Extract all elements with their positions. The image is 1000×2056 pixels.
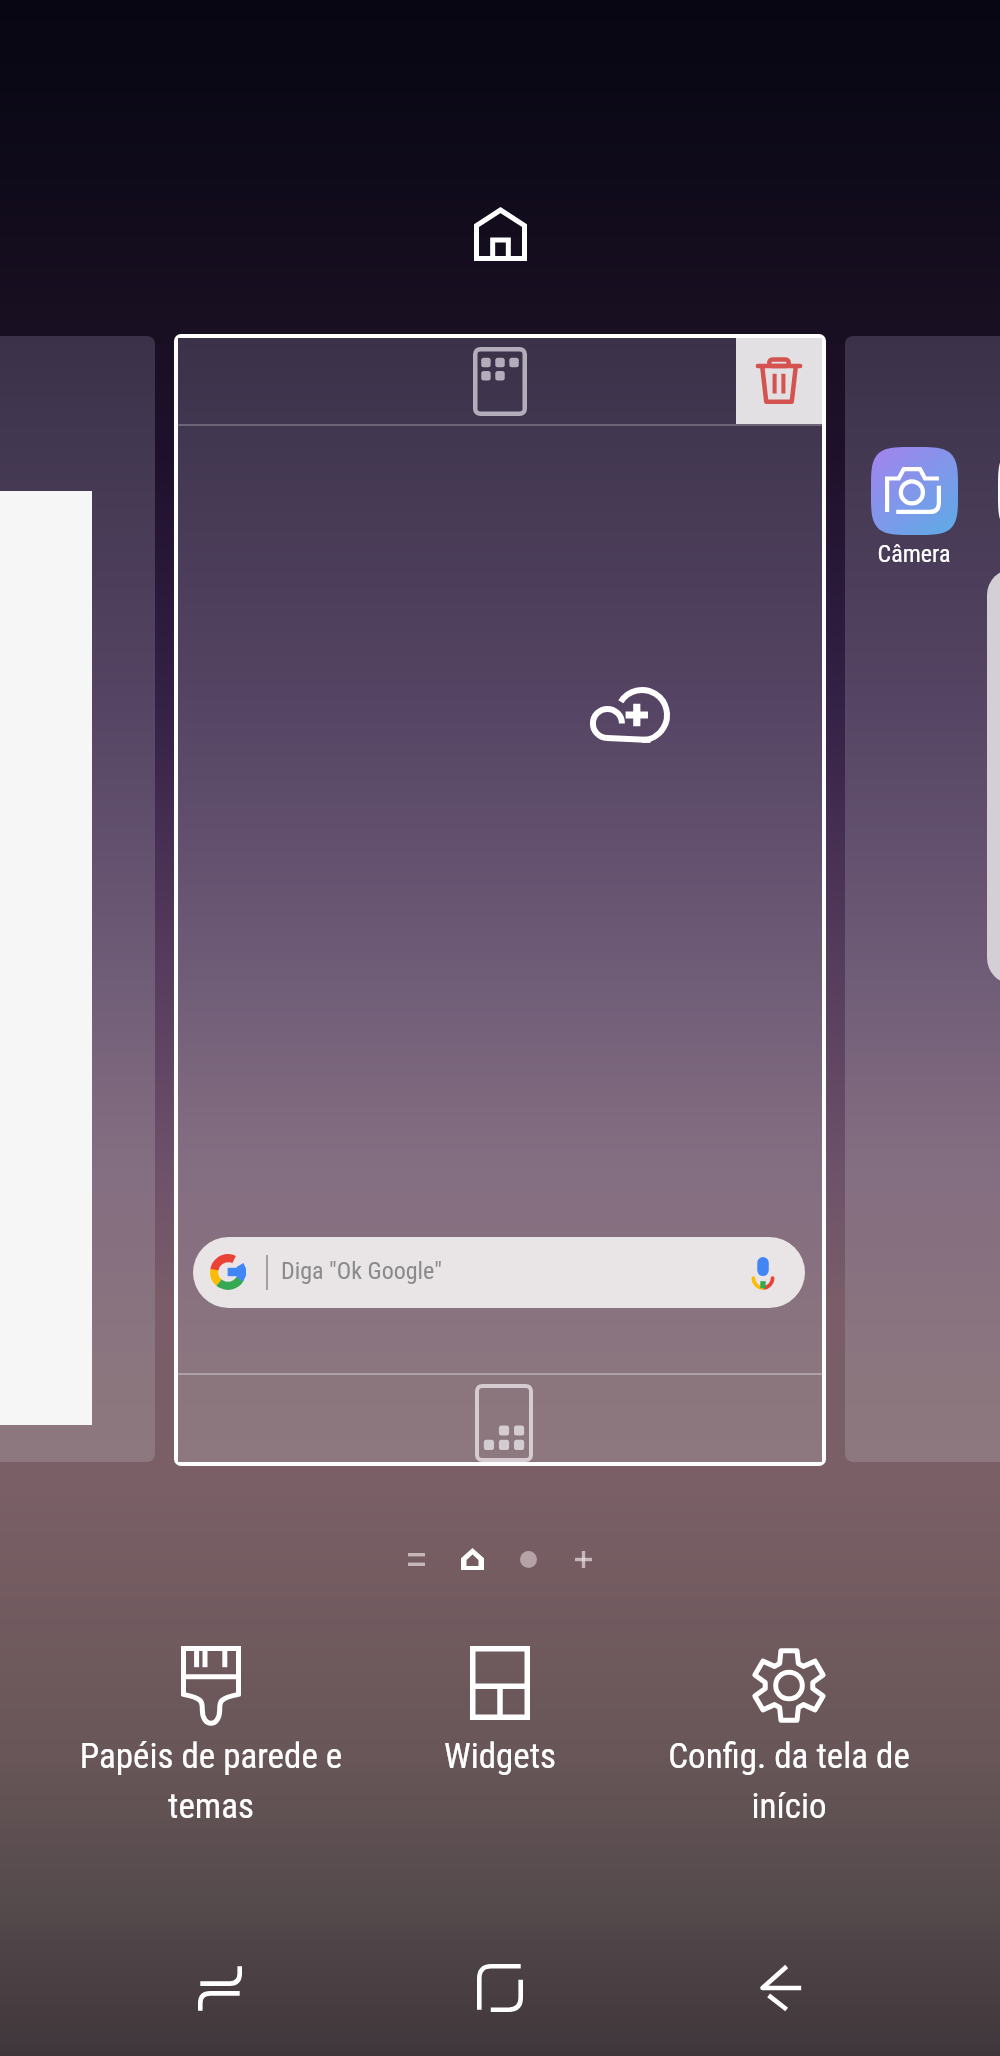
button[interactable]: Add page [555,1531,611,1587]
button[interactable]: Home screen [450,190,550,278]
staticText: Config. da tela de início [639,1736,939,1826]
staticText: Papéis de parede e temas [61,1736,361,1826]
staticText: Diga "Ok Google" [281,1257,442,1285]
button[interactable]: Recents [160,1928,280,2048]
staticText: Widgets [350,1736,650,1777]
button[interactable]: Câmera [845,336,1000,1462]
button[interactable]: Config. da tela de início [639,1640,939,1830]
button[interactable]: Diga "Ok Google" [193,1237,805,1308]
button[interactable]: Papéis de parede e temas [61,1640,361,1830]
button[interactable]: Back [721,1928,841,2048]
button[interactable]: Remove page [736,338,822,424]
button[interactable]: Bixby Home page [388,1531,444,1587]
staticText: Câmera [854,540,974,568]
button[interactable]: Remove page [178,338,822,1462]
button[interactable] [0,336,155,1462]
button[interactable]: Home page [444,1531,500,1587]
button[interactable]: Home [440,1928,560,2048]
button[interactable]: Widgets [350,1640,650,1830]
button[interactable]: Page 3 [500,1531,556,1587]
